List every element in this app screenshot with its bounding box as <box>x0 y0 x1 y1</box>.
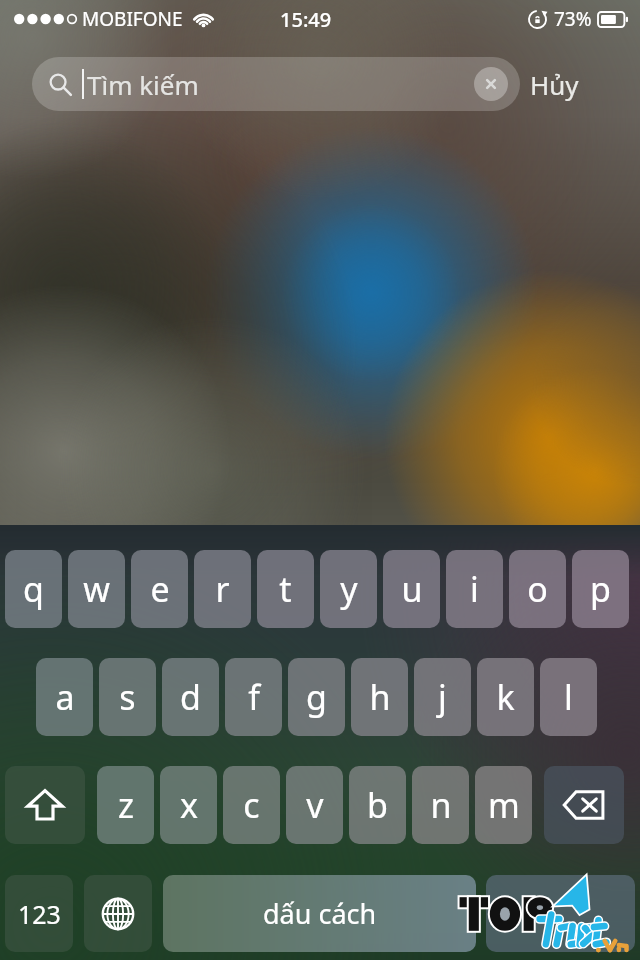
button[interactable]: w <box>68 550 125 628</box>
staticText: Tìm kiếm <box>87 67 199 102</box>
button[interactable]: g <box>288 658 345 736</box>
button[interactable]: v <box>286 766 343 844</box>
staticText: l <box>564 674 573 720</box>
button[interactable]: n <box>412 766 469 844</box>
button[interactable]: b <box>349 766 406 844</box>
staticText: k <box>496 674 515 720</box>
staticText: w <box>83 566 110 612</box>
staticText: MOBIFONE <box>82 6 183 32</box>
staticText: b <box>367 782 388 828</box>
staticText: 73% <box>554 6 592 32</box>
staticText: t <box>279 566 292 612</box>
button[interactable]: t <box>257 550 314 628</box>
button[interactable]: l <box>540 658 597 736</box>
button[interactable]: d <box>162 658 219 736</box>
button[interactable]: j <box>414 658 471 736</box>
button[interactable]: x <box>160 766 217 844</box>
staticText: a <box>55 674 75 720</box>
staticText: j <box>438 674 447 720</box>
button[interactable]: dấu cách <box>163 875 476 952</box>
staticText: e <box>150 566 170 612</box>
staticText: o <box>527 566 548 612</box>
button[interactable]: Change keyboard <box>84 875 152 952</box>
button[interactable]: z <box>97 766 154 844</box>
button[interactable]: q <box>5 550 62 628</box>
button[interactable]: e <box>131 550 188 628</box>
button[interactable]: u <box>383 550 440 628</box>
staticText: z <box>118 782 134 828</box>
button[interactable]: c <box>223 766 280 844</box>
staticText: Hủy <box>530 67 579 102</box>
staticText: c <box>243 782 260 828</box>
staticText: p <box>590 566 611 612</box>
button[interactable]: y <box>320 550 377 628</box>
staticText: h <box>369 674 391 720</box>
button[interactable]: a <box>36 658 93 736</box>
button[interactable]: Clear search <box>474 67 508 101</box>
button[interactable]: h <box>351 658 408 736</box>
button[interactable]: i <box>446 550 503 628</box>
button[interactable]: 123 <box>5 875 73 952</box>
staticText: q <box>23 566 44 612</box>
button[interactable]: p <box>572 550 629 628</box>
staticText: v <box>306 782 324 828</box>
button[interactable]: m <box>475 766 532 844</box>
staticText: 123 <box>18 897 61 931</box>
button[interactable]: s <box>99 658 156 736</box>
staticText: g <box>306 674 327 720</box>
staticText: x <box>180 782 198 828</box>
button[interactable]: Search <box>486 875 635 952</box>
button[interactable]: Hủy <box>530 57 579 111</box>
button[interactable]: Tìm kiếm <box>32 57 520 111</box>
staticText: dấu cách <box>263 895 377 932</box>
button[interactable]: r <box>194 550 251 628</box>
staticText: i <box>470 566 479 612</box>
staticText: m <box>488 782 520 828</box>
staticText: f <box>248 674 260 720</box>
button[interactable]: Shift <box>5 766 85 844</box>
button[interactable]: k <box>477 658 534 736</box>
staticText: u <box>401 566 423 612</box>
button[interactable]: o <box>509 550 566 628</box>
staticText: n <box>430 782 452 828</box>
staticText: d <box>180 674 201 720</box>
staticText: s <box>119 674 136 720</box>
staticText: 15:49 <box>280 6 332 33</box>
staticText: y <box>340 566 358 612</box>
button[interactable]: f <box>225 658 282 736</box>
button[interactable]: Backspace <box>544 766 624 844</box>
staticText: r <box>215 566 230 612</box>
